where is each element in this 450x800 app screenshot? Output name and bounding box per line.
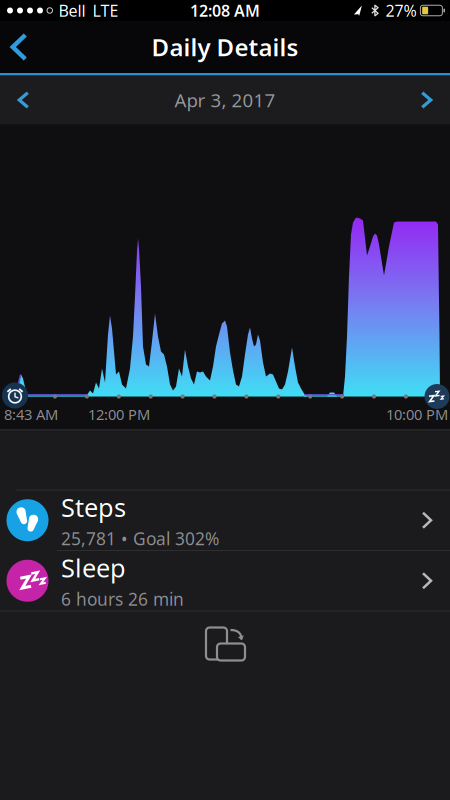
staticText: 27% [385, 0, 416, 21]
staticText: LTE [92, 0, 118, 21]
staticText: Daily Details [151, 31, 298, 63]
staticText: 12:00 PM [88, 404, 150, 424]
staticText: Sleep [61, 551, 126, 584]
staticText: 8:43 AM [4, 404, 58, 424]
staticText: 25,781 • Goal 302% [61, 527, 219, 550]
button[interactable] [0, 21, 44, 73]
button[interactable] [403, 75, 450, 124]
staticText: Steps [61, 490, 126, 524]
button[interactable]: Steps [0, 490, 450, 550]
button[interactable] [197, 620, 253, 668]
staticText: Apr 3, 2017 [174, 88, 275, 112]
staticText: Bell [58, 0, 85, 21]
staticText: 12:08 AM [190, 0, 260, 21]
staticText: 10:00 PM [386, 404, 448, 424]
staticText: 6 hours 26 min [61, 588, 184, 611]
button[interactable]: Sleep [0, 551, 450, 610]
button[interactable] [0, 75, 47, 124]
